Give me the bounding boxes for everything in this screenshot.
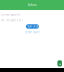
staticText: +: [59, 61, 61, 66]
staticText: Learn more: [25, 30, 40, 34]
staticText: Conversations: [1, 13, 20, 16]
staticText: No messages yet: [1, 18, 23, 22]
button[interactable]: Start chat: [26, 24, 39, 29]
button[interactable]: Learn more: [1, 29, 64, 34]
staticText: Start chat: [27, 25, 38, 28]
button[interactable]: New message: [57, 60, 62, 66]
staticText: Inbox: [28, 3, 36, 7]
